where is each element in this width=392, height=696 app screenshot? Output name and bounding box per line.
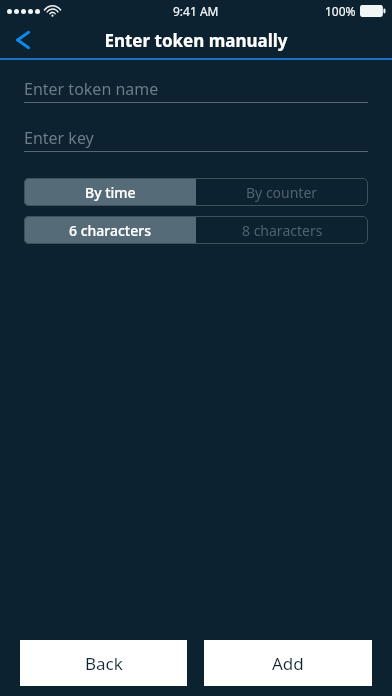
button[interactable]: 8 characters [196, 216, 368, 244]
staticText: Enter key [24, 127, 94, 149]
staticText: 9:41 AM [173, 3, 219, 19]
button[interactable]: Back [0, 22, 46, 58]
staticText: Back [85, 652, 123, 675]
button[interactable]: Enter key [24, 125, 368, 152]
button[interactable]: Back [20, 640, 187, 686]
staticText: Enter token name [24, 78, 159, 100]
button[interactable]: 6 characters [24, 216, 196, 244]
button[interactable]: Add [204, 640, 372, 686]
staticText: By time [85, 183, 136, 202]
button[interactable]: Enter token name [24, 76, 368, 103]
button[interactable]: By counter [196, 178, 368, 206]
staticText: 6 characters [69, 221, 151, 240]
staticText: By counter [246, 183, 318, 202]
staticText: Enter token manually [104, 29, 288, 52]
staticText: 8 characters [242, 221, 323, 240]
staticText: 100% [325, 3, 356, 19]
button[interactable]: By time [24, 178, 196, 206]
staticText: Add [272, 652, 304, 675]
